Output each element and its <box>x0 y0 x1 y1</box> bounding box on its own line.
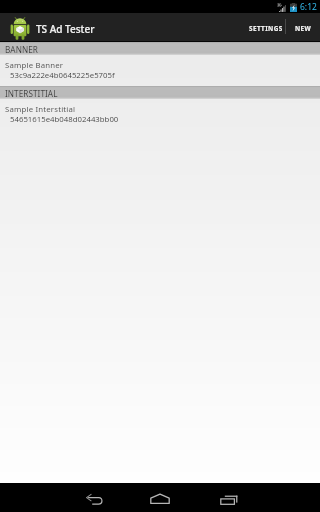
staticText: BANNER <box>5 44 38 55</box>
staticText: Sample Banner <box>5 60 64 71</box>
staticText: 53c9a222e4b0645225e5705f <box>10 70 115 81</box>
staticText: TS Ad Tester <box>36 22 95 36</box>
staticText: SETTINGS <box>249 24 283 33</box>
staticText: 6:12 <box>300 1 317 13</box>
staticText: NEW <box>295 24 312 33</box>
button[interactable]: SETTINGS <box>245 13 285 41</box>
button[interactable]: Back <box>60 483 126 512</box>
button[interactable]: Sample Banner <box>0 55 320 86</box>
staticText: INTERSTITIAL <box>5 88 58 99</box>
staticText: 54651615e4b048d02443bb00 <box>10 114 119 125</box>
button[interactable]: Recent apps <box>194 483 260 512</box>
staticText: Sample Interstitial <box>5 104 76 115</box>
button[interactable]: Sample Interstitial <box>0 99 320 130</box>
button[interactable]: Home <box>127 483 193 512</box>
button[interactable]: NEW <box>286 13 320 41</box>
